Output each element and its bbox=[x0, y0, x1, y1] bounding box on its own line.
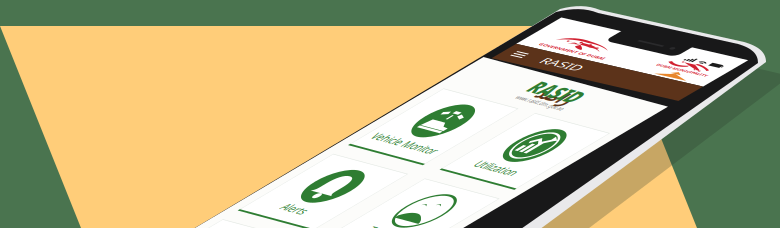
button[interactable]: Utilization bbox=[204, 66, 356, 196]
button[interactable]: Menu bbox=[0, 110, 63, 170]
staticText: Vehicle Monitor bbox=[31, 158, 157, 181]
button[interactable]: Tracking bbox=[204, 216, 356, 228]
button[interactable]: Alerts bbox=[18, 216, 170, 228]
button[interactable]: Vehicle Monitor bbox=[18, 66, 170, 196]
staticText: راصد bbox=[162, 17, 227, 47]
staticText: Utilization bbox=[240, 158, 320, 181]
staticText: RASID bbox=[137, 4, 234, 44]
